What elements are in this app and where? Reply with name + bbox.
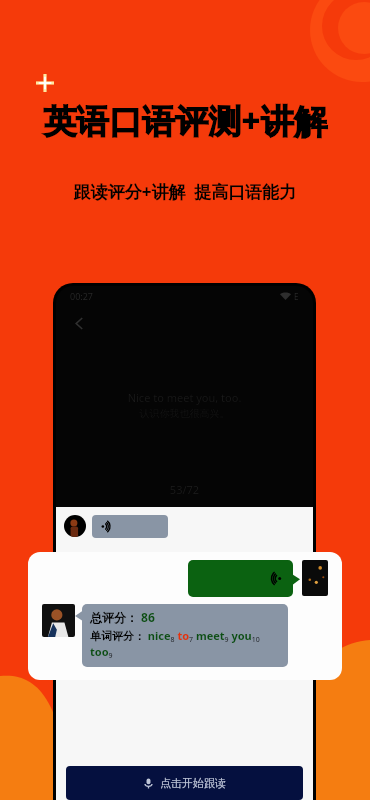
staticText: 关闭讲解 (263, 650, 295, 660)
staticText: 00:27 (70, 290, 94, 302)
staticText: E (294, 291, 299, 302)
staticText: 英语口语评测+讲解 (0, 98, 370, 143)
button[interactable]: Play my recording (188, 560, 293, 597)
staticText: 总评分： 86 (90, 609, 155, 625)
button[interactable]: 关闭讲解 (263, 616, 295, 660)
button[interactable]: 总评分： 86 (82, 604, 288, 667)
button[interactable]: Play audio (92, 515, 168, 538)
staticText: 单词评分： nice8 to7 meet9 you10 too9 (90, 628, 283, 660)
button[interactable]: Back (68, 312, 90, 334)
staticText: 跟读评分+讲解 提高口语能力 (0, 180, 370, 203)
staticText: 点击开始跟读 (160, 776, 226, 790)
staticText: Nice to meet you, too. (56, 390, 313, 405)
button[interactable]: 点击开始跟读 (66, 766, 303, 800)
